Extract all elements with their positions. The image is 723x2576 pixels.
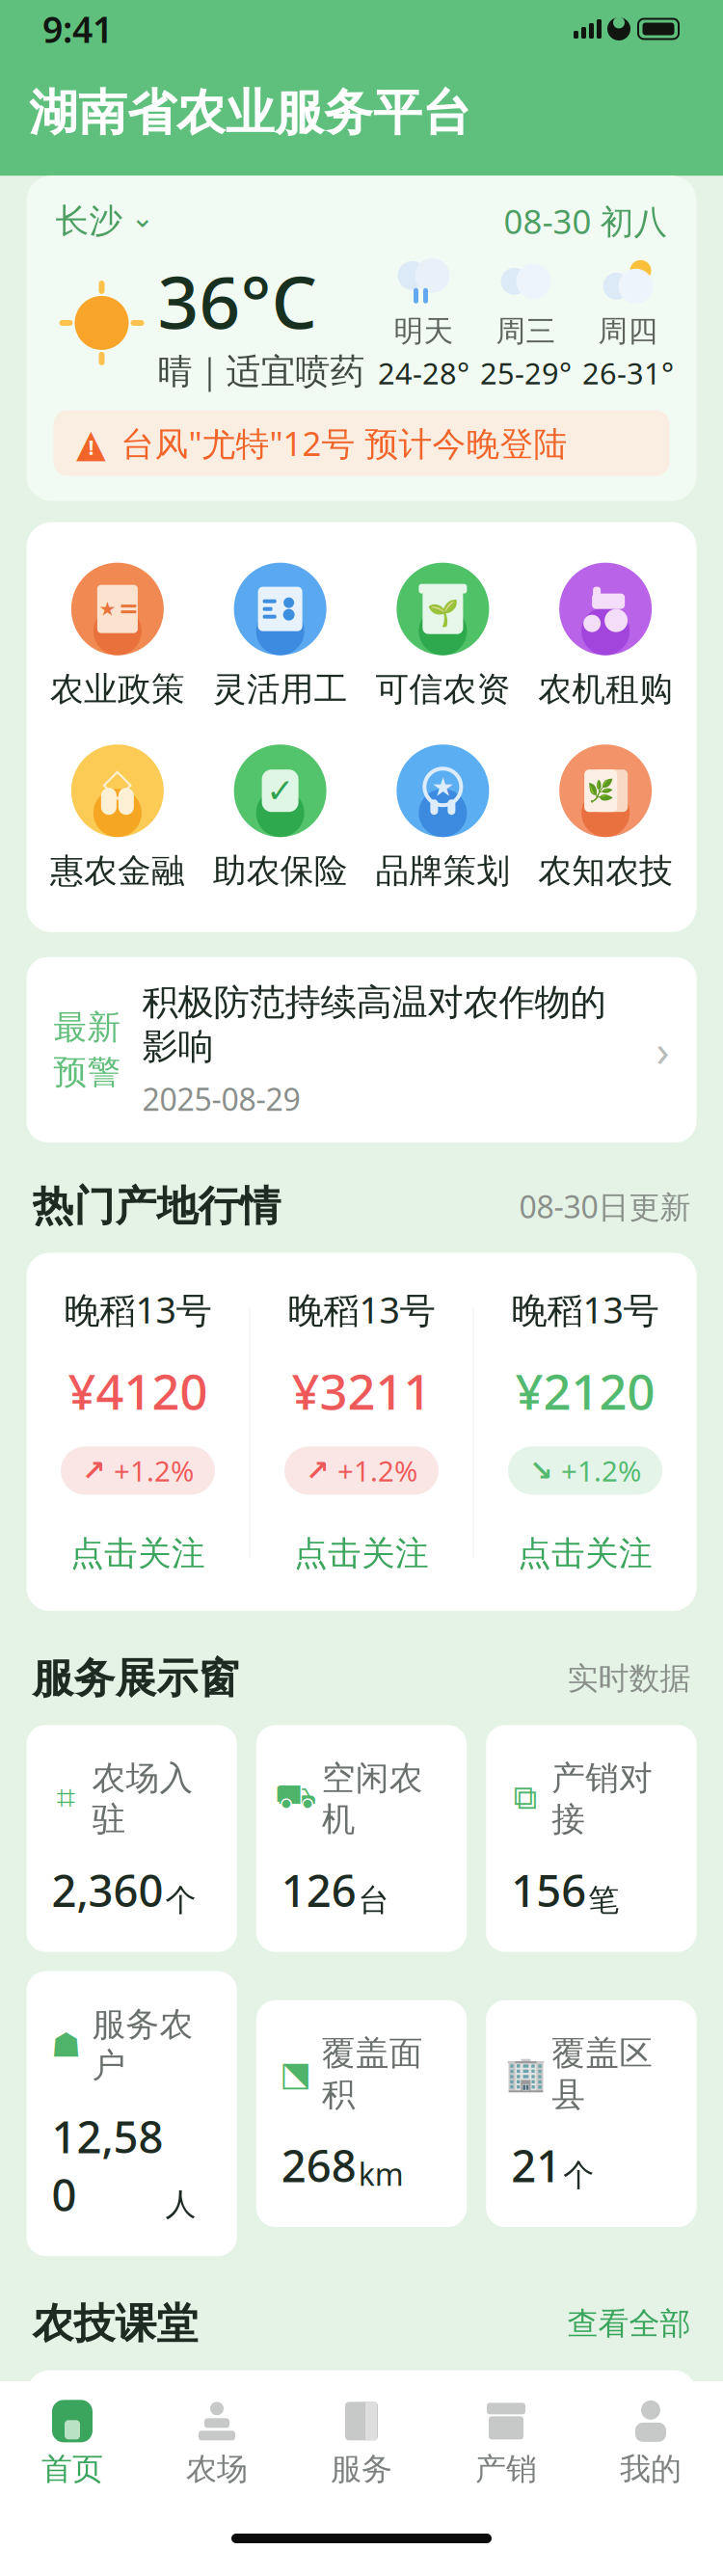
staticText: 156 <box>511 1861 586 1919</box>
staticText: +1.2% <box>561 1452 641 1489</box>
staticText: 产销 <box>475 2450 537 2488</box>
staticText: ▲ <box>76 421 106 465</box>
staticText: 我的 <box>620 2450 682 2488</box>
staticText: ¥4120 <box>68 1358 208 1423</box>
staticText: 空闲农机 <box>322 1758 423 1840</box>
staticText: 21 <box>511 2136 561 2194</box>
staticText: 08-30日更新 <box>519 1186 691 1227</box>
staticText: 长沙 <box>55 201 123 242</box>
button[interactable]: 最新 <box>27 957 696 1142</box>
staticText: 品牌策划 <box>375 851 510 892</box>
staticText: ¥3211 <box>292 1358 431 1423</box>
staticText: 助农保险 <box>213 851 348 892</box>
staticText: 农技课堂 <box>32 2299 198 2349</box>
staticText: ↘ <box>529 1454 553 1487</box>
staticText: 预警 <box>54 1052 121 1093</box>
button[interactable]: 08-30日更新 <box>519 1186 691 1227</box>
staticText: 晚稻13号 <box>511 1285 659 1333</box>
staticText: ↗ <box>306 1454 330 1487</box>
staticText: 灵活用工 <box>213 669 348 710</box>
staticText: ⧉ <box>514 1782 538 1815</box>
button[interactable]: ◇ <box>36 744 199 892</box>
staticText: ☗ <box>51 2026 81 2064</box>
button[interactable]: ☗ <box>27 1971 237 2256</box>
button[interactable]: 点击关注 <box>55 1524 221 1584</box>
staticText: ↗ <box>82 1454 106 1487</box>
button[interactable]: 长沙 <box>55 201 155 242</box>
staticText: 晚稻13号 <box>288 1285 435 1333</box>
staticText: 个 <box>563 2156 594 2194</box>
staticText: 农业政策 <box>50 669 185 710</box>
staticText: 36°C <box>158 253 317 349</box>
staticText: 农场 <box>186 2450 248 2488</box>
staticText: 农知农技 <box>538 851 673 892</box>
staticText: 点击关注 <box>294 1533 429 1574</box>
button[interactable]: ★ <box>36 563 199 710</box>
staticText: 人 <box>165 2185 196 2223</box>
button[interactable]: 服务 <box>289 2384 434 2498</box>
staticText: › <box>656 1021 669 1079</box>
staticText: 服务农户 <box>92 2004 193 2086</box>
button[interactable]: 点击关注 <box>279 1524 444 1584</box>
button[interactable]: 点击关注 <box>502 1524 668 1584</box>
staticText: 实时数据 <box>567 1660 691 1697</box>
staticText: ⌄ <box>131 201 155 233</box>
button[interactable]: 我的 <box>578 2384 723 2498</box>
staticText: 农机租购 <box>538 669 673 710</box>
button[interactable]: 灵活用工 <box>199 563 361 710</box>
staticText: +1.2% <box>337 1452 417 1489</box>
button[interactable]: ⛟ <box>256 1725 467 1952</box>
staticText: ★ <box>99 598 116 620</box>
button[interactable]: 实时数据 <box>567 1660 691 1697</box>
staticText: 可信农资 <box>375 669 510 710</box>
button[interactable]: 🏢 <box>486 2000 696 2227</box>
staticText: km <box>358 2153 404 2194</box>
staticText: ⬔ <box>280 2055 312 2093</box>
staticText: ✓ <box>266 772 294 810</box>
staticText: 最新 <box>54 1007 121 1048</box>
staticText: 热门产地行情 <box>32 1181 281 1232</box>
button[interactable]: ⬔ <box>256 2000 467 2227</box>
staticText: ▶ <box>335 2526 388 2576</box>
staticText: 2025-08-29 <box>142 1078 300 1119</box>
button[interactable]: 产销 <box>434 2384 578 2498</box>
staticText: 24-28° <box>378 353 469 392</box>
button[interactable]: ★ <box>361 744 524 892</box>
staticText: 笔 <box>588 1881 619 1919</box>
staticText: ◇ <box>103 760 132 804</box>
staticText: 268 <box>281 2136 356 2194</box>
button[interactable]: ▲ <box>54 410 669 476</box>
staticText: ¥2120 <box>515 1358 655 1423</box>
staticText: 2,360 <box>52 1861 163 1919</box>
button[interactable]: 农机租购 <box>524 563 687 710</box>
staticText: 周三 <box>496 313 556 349</box>
button[interactable]: ✓ <box>199 744 361 892</box>
button[interactable]: 🌱 <box>361 563 524 710</box>
staticText: 覆盖区县 <box>552 2033 653 2115</box>
button[interactable]: 查看全部 <box>567 2305 691 2343</box>
staticText: ★ <box>431 772 454 802</box>
button[interactable]: 首页 <box>0 2384 145 2498</box>
staticText: ⌗ <box>56 1782 76 1815</box>
staticText: 明天 <box>394 313 454 349</box>
staticText: 台 <box>358 1881 389 1919</box>
staticText: ⛟ <box>275 1782 317 1815</box>
button[interactable]: ⧉ <box>486 1725 696 1952</box>
staticText: 周四 <box>598 313 658 349</box>
staticText: 9:41 <box>42 5 113 53</box>
staticText: 积极防范持续高温对农作物的影响 <box>142 980 606 1069</box>
button[interactable]: ⌗ <box>27 1725 237 1952</box>
staticText: 首页 <box>41 2450 103 2488</box>
staticText: 晴｜适宜喷药 <box>158 350 365 393</box>
staticText: 晚稻13号 <box>64 1285 212 1333</box>
button[interactable]: 🌿 <box>524 744 687 892</box>
staticText: 🌿 <box>587 778 614 803</box>
staticText: 覆盖面积 <box>322 2033 423 2115</box>
staticText: 🌱 <box>427 598 459 628</box>
button[interactable]: 农场 <box>145 2384 289 2498</box>
button[interactable]: ▶ <box>48 2391 675 2576</box>
staticText: 26-31° <box>582 353 674 392</box>
staticText: 产销对接 <box>552 1758 653 1840</box>
staticText: 126 <box>281 1861 356 1919</box>
staticText: 查看全部 <box>567 2305 691 2343</box>
